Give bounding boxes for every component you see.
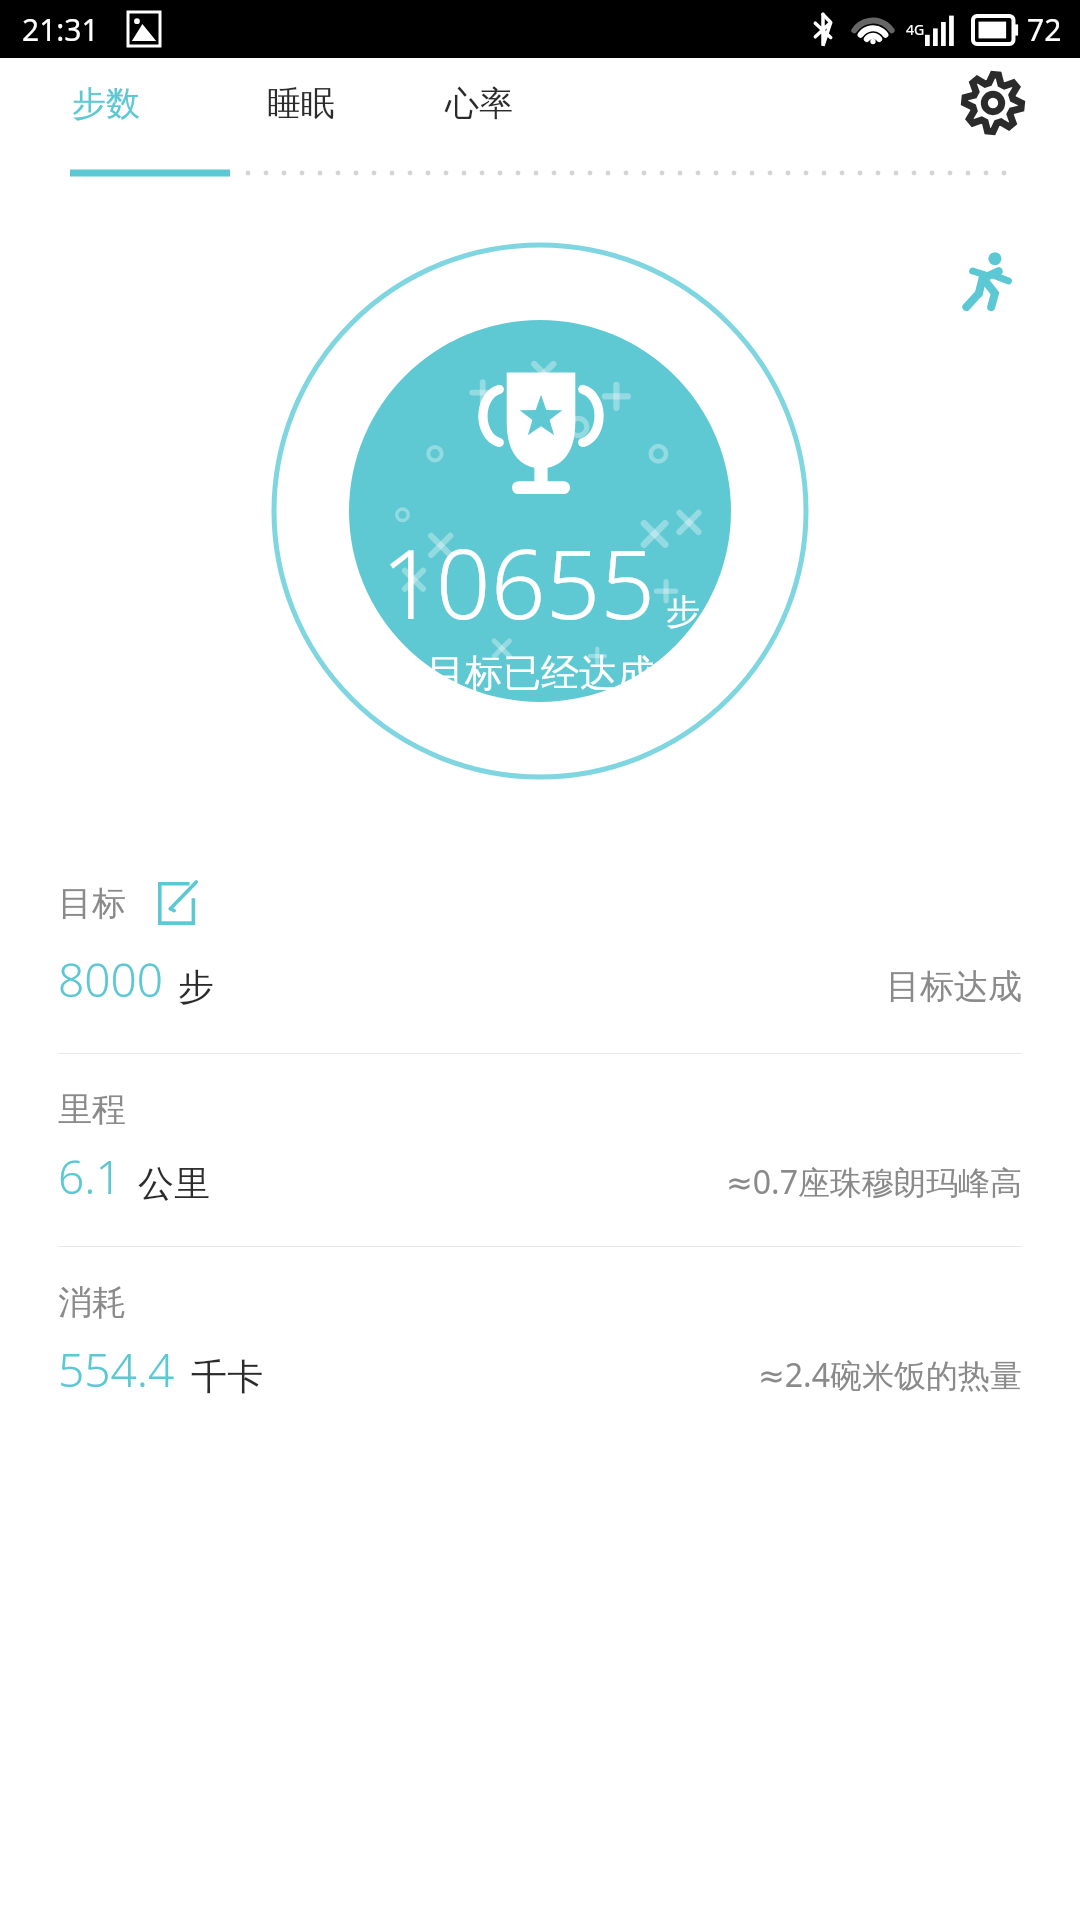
staticText: 8000 [58, 948, 164, 1011]
staticText: ≈0.7座珠穆朗玛峰高 [726, 1160, 1022, 1204]
button[interactable]: Settings [958, 68, 1028, 138]
staticText: 10655 [381, 516, 656, 647]
button[interactable]: 心率 [390, 58, 568, 148]
staticText: 72 [1027, 9, 1062, 50]
staticText: 554.4 [58, 1338, 175, 1401]
staticText: 消耗 [58, 1281, 126, 1324]
staticText: 4G [906, 20, 925, 39]
staticText: ≈2.4碗米饭的热量 [758, 1353, 1022, 1397]
button[interactable]: 消耗 [58, 1247, 1022, 1439]
staticText: 目标 [58, 882, 126, 925]
staticText: 步 [178, 964, 214, 1009]
staticText: 21:31 [22, 9, 99, 50]
staticText: 目标达成 [886, 965, 1022, 1008]
staticText: 睡眠 [267, 82, 335, 125]
button[interactable]: 里程 [58, 1054, 1022, 1246]
button[interactable]: 步数 [0, 58, 212, 148]
staticText: 目标已经达成 [427, 649, 655, 697]
button[interactable]: Running activity [948, 244, 1022, 318]
staticText: 6.1 [58, 1145, 122, 1208]
other: Edit goal [152, 876, 206, 930]
staticText: 步 [666, 590, 700, 633]
button[interactable]: 睡眠 [212, 58, 390, 148]
staticText: 心率 [445, 82, 513, 125]
staticText: 公里 [138, 1161, 210, 1206]
staticText: 里程 [58, 1088, 126, 1131]
staticText: 千卡 [191, 1354, 263, 1399]
staticText: 步数 [72, 82, 140, 125]
button[interactable]: 目标 [58, 876, 1022, 930]
